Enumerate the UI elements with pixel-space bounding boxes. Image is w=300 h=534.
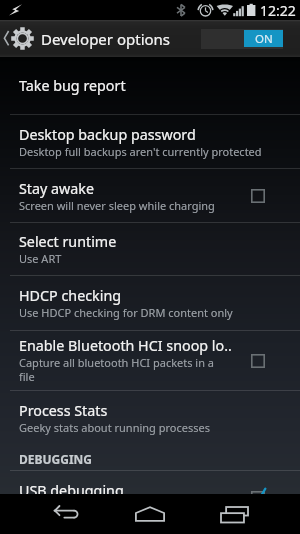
button[interactable]: Recent apps: [192, 494, 276, 534]
staticText: ON: [255, 31, 273, 47]
button[interactable]: Stay awake: [0, 169, 300, 222]
staticText: Screen will never sleep while charging: [19, 198, 215, 213]
staticText: 12:22: [260, 1, 296, 20]
button[interactable]: Process Stats: [0, 391, 300, 444]
button[interactable]: Select runtime: [0, 223, 300, 275]
staticText: Desktop backup password: [19, 125, 196, 144]
button[interactable]: Home: [108, 494, 192, 534]
button[interactable]: Developer options switch, on: [201, 20, 283, 57]
button[interactable]: Enable Bluetooth HCI snoop lo..: [0, 331, 300, 390]
button[interactable]: Back: [24, 494, 108, 534]
staticText: Select runtime: [19, 232, 117, 251]
staticText: Desktop full backups aren't currently pr…: [19, 144, 262, 159]
staticText: Enable Bluetooth HCI snoop lo..: [19, 336, 232, 355]
staticText: Use HDCP checking for DRM content only: [19, 305, 233, 320]
staticText: Use ART: [19, 251, 62, 266]
button[interactable]: Desktop backup password: [0, 115, 300, 168]
staticText: Developer options: [41, 29, 171, 49]
staticText: HDCP checking: [19, 286, 122, 305]
staticText: Take bug report: [19, 76, 126, 95]
button[interactable]: HDCP checking: [0, 276, 300, 330]
button[interactable]: USB debugging: [0, 471, 300, 494]
staticText: Stay awake: [19, 179, 95, 198]
button[interactable]: Take bug report: [0, 57, 300, 114]
staticText: Process Stats: [19, 401, 108, 420]
staticText: DEBUGGING: [19, 451, 93, 467]
staticText: USB debugging: [19, 481, 124, 494]
staticText: Capture all bluetooth HCI packets in a f…: [19, 355, 215, 385]
button[interactable]: Navigate up: [0, 20, 38, 57]
staticText: Geeky stats about running processes: [19, 420, 210, 435]
